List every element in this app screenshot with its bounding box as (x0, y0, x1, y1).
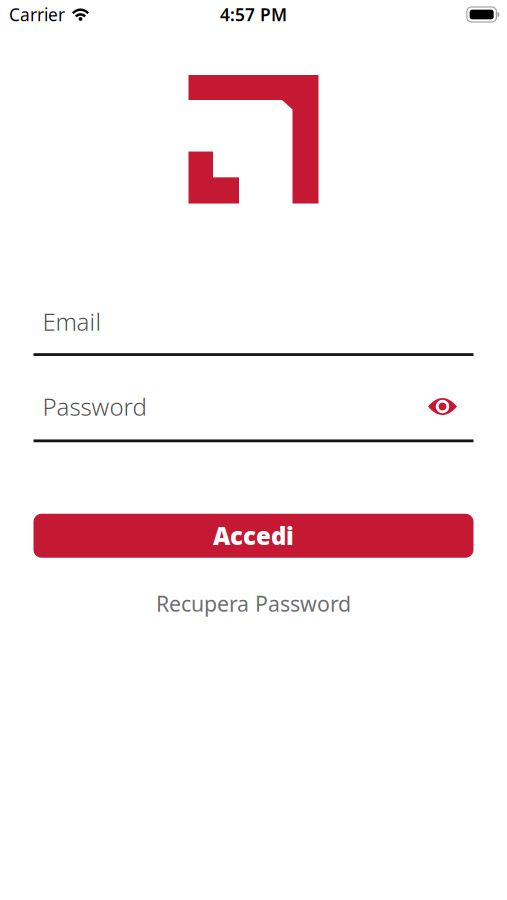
button[interactable]: Accedi (33, 514, 473, 558)
staticText: Recupera Password (156, 589, 351, 617)
staticText: Email (42, 305, 101, 337)
staticText: Accedi (213, 520, 294, 552)
button[interactable]: Show password (428, 398, 457, 415)
staticText: Carrier (9, 3, 65, 26)
staticText: Password (42, 391, 146, 422)
staticText: 4:57 PM (220, 3, 287, 26)
button[interactable]: Recupera Password (156, 589, 351, 617)
